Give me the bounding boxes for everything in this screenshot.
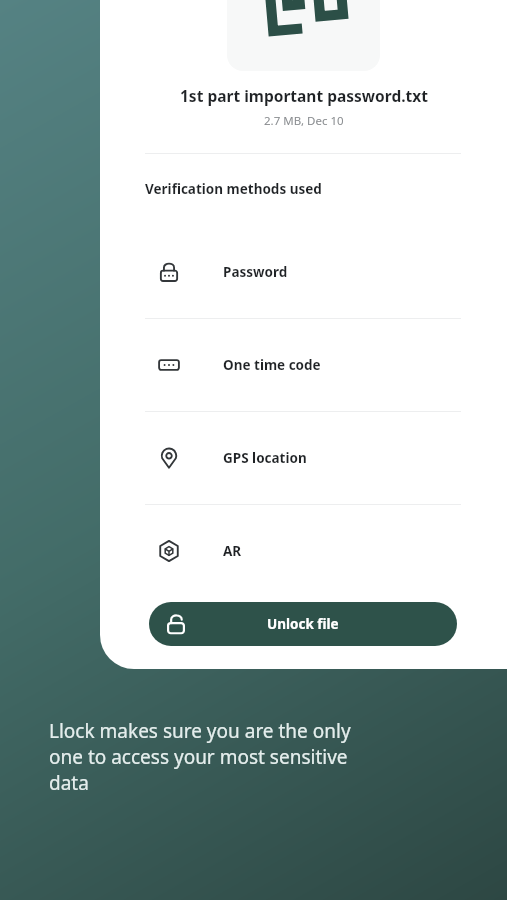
staticText: Verification methods used	[145, 180, 322, 198]
button[interactable]: Password	[100, 226, 507, 318]
staticText: one to access your most sensitive	[49, 744, 348, 770]
staticText: GPS location	[223, 449, 307, 467]
staticText: data	[49, 770, 89, 796]
button[interactable]: GPS location	[100, 412, 507, 504]
staticText: 2.7 MB, Dec 10	[264, 113, 344, 129]
button[interactable]: AR	[100, 505, 507, 597]
staticText: Llock makes sure you are the only	[49, 718, 351, 744]
button[interactable]: Unlock	[149, 602, 457, 646]
staticText: Unlock file	[267, 615, 339, 633]
staticText: One time code	[223, 356, 321, 374]
other: Unlock	[165, 613, 187, 635]
button[interactable]: One time code	[100, 319, 507, 411]
staticText: AR	[223, 542, 242, 560]
staticText: 1st part important password.txt	[180, 85, 428, 106]
staticText: Password	[223, 263, 288, 281]
